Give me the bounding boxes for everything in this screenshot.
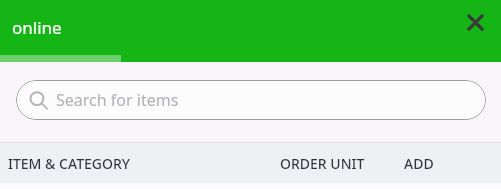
staticText: ADD xyxy=(404,154,434,173)
staticText: Search for items xyxy=(56,89,179,111)
staticText: online xyxy=(12,16,62,39)
button[interactable]: Search for items xyxy=(16,80,486,120)
button[interactable]: ADD xyxy=(402,143,501,183)
button[interactable]: ITEM & CATEGORY xyxy=(0,143,272,183)
button[interactable]: online xyxy=(0,0,121,62)
button[interactable]: ORDER UNIT xyxy=(272,143,402,183)
button[interactable]: Close xyxy=(457,4,493,40)
staticText: ITEM & CATEGORY xyxy=(8,154,130,173)
staticText: ORDER UNIT xyxy=(280,154,365,173)
